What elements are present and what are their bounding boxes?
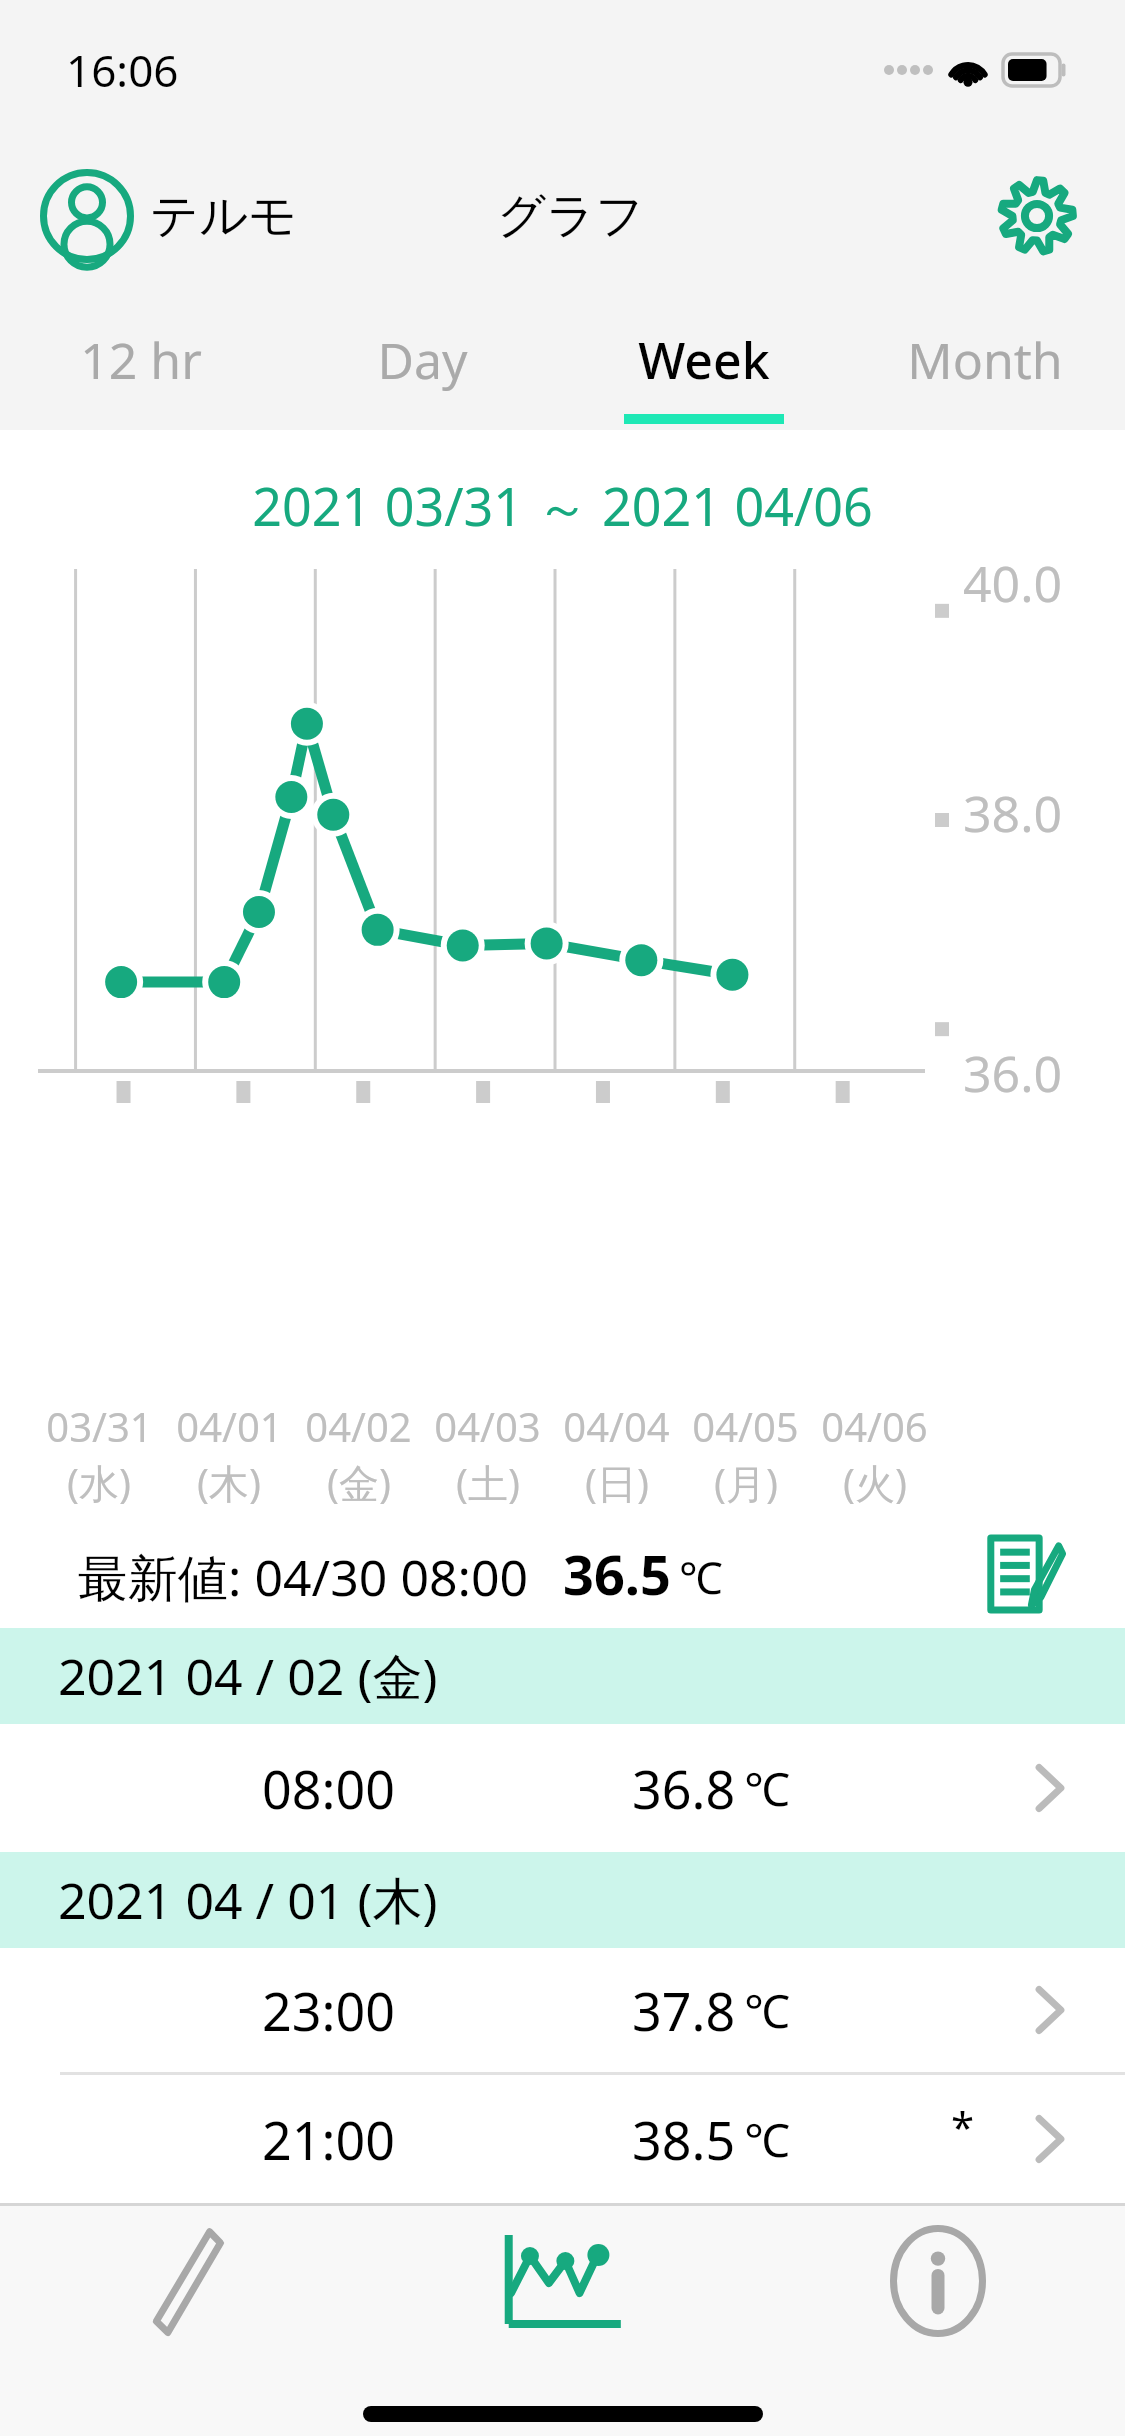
staticText: 04/02 (305, 1399, 412, 1453)
staticText: (水) (67, 1455, 131, 1510)
staticText: Week (638, 326, 770, 394)
staticText: 04/03 (434, 1399, 541, 1453)
staticText: 2021 03/31 ～ 2021 04/06 (0, 470, 1125, 541)
staticText: Day (377, 326, 468, 394)
button[interactable]: Day (282, 300, 563, 430)
staticText: 12 hr (80, 326, 202, 394)
staticText: ℃ (744, 2108, 790, 2171)
staticText: テルモ (150, 186, 298, 246)
button[interactable]: Profile (40, 169, 298, 263)
staticText: 2021 04 / 01 (木) (58, 1866, 438, 1934)
button[interactable]: Week (563, 300, 844, 430)
staticText: * (951, 2098, 975, 2155)
button[interactable]: Record (0, 2206, 375, 2356)
staticText: 21:00 (262, 2104, 395, 2175)
staticText: (土) (456, 1455, 520, 1510)
button[interactable]: Edit records (977, 1529, 1067, 1619)
staticText: 36.5 (563, 1537, 671, 1611)
staticText: 04/05 (692, 1399, 799, 1453)
staticText: ℃ (679, 1547, 723, 1607)
staticText: ℃ (744, 1979, 790, 2042)
staticText: (火) (843, 1455, 907, 1510)
staticText: 40.0 (963, 549, 1063, 617)
button[interactable]: 23:00 (0, 1948, 1125, 2072)
button[interactable]: Month (844, 300, 1125, 430)
staticText: 36.0 (963, 1039, 1063, 1107)
staticText: 04/01 (176, 1399, 283, 1453)
staticText: (月) (714, 1455, 778, 1510)
staticText: 37.8 (632, 1975, 736, 2046)
staticText: 03/31 (46, 1399, 153, 1453)
staticText: Month (907, 326, 1063, 394)
staticText: グラフ (497, 186, 645, 246)
staticText: 16:06 (66, 40, 179, 100)
staticText: ℃ (744, 1757, 790, 1820)
staticText: 38.0 (963, 779, 1063, 847)
button[interactable]: 2021 04 / 01 (木) (0, 1852, 1125, 1948)
button[interactable]: 2021 04 / 02 (金) (0, 1628, 1125, 1724)
button[interactable]: Information (750, 2206, 1125, 2356)
button[interactable]: 21:00 (0, 2075, 1125, 2203)
other: Profile (40, 169, 134, 263)
staticText: 23:00 (262, 1975, 395, 2046)
staticText: (木) (197, 1455, 261, 1510)
staticText: 36.8 (632, 1753, 736, 1824)
staticText: (金) (327, 1455, 391, 1510)
staticText: 08:00 (262, 1753, 395, 1824)
staticText: 04/06 (821, 1399, 928, 1453)
button[interactable]: Graph (375, 2206, 750, 2356)
button[interactable]: 12 hr (0, 300, 282, 430)
staticText: 2021 04 / 02 (金) (58, 1642, 438, 1710)
staticText: 04/04 (563, 1399, 670, 1453)
staticText: 38.5 (632, 2104, 736, 2175)
staticText: (日) (585, 1455, 649, 1510)
button[interactable]: Settings (989, 168, 1085, 264)
staticText: 最新値: 04/30 08:00 (78, 1543, 529, 1611)
button[interactable]: 08:00 (0, 1724, 1125, 1852)
